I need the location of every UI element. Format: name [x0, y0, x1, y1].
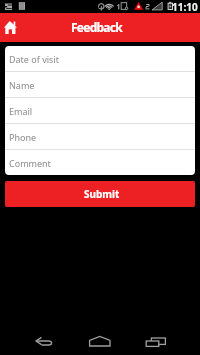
staticText: Feedback — [71, 19, 122, 35]
staticText: Name — [9, 79, 35, 91]
button[interactable]: Date of visit — [5, 46, 195, 71]
staticText: Comment — [9, 157, 51, 169]
staticText: Date of visit — [9, 53, 59, 65]
button[interactable]: Comment — [5, 150, 195, 175]
button[interactable]: Recents — [132, 316, 200, 355]
button[interactable]: Email — [5, 98, 195, 123]
staticText: 11:10 — [172, 0, 198, 13]
button[interactable]: Back — [0, 316, 66, 355]
button[interactable]: Home — [66, 316, 132, 355]
button[interactable]: Home — [0, 13, 22, 42]
button[interactable]: Submit — [5, 181, 195, 207]
staticText: Phone — [9, 131, 37, 143]
button[interactable]: Name — [5, 72, 195, 97]
staticText: Email — [9, 105, 33, 117]
button[interactable]: Phone — [5, 124, 195, 149]
staticText: Submit — [84, 187, 120, 201]
